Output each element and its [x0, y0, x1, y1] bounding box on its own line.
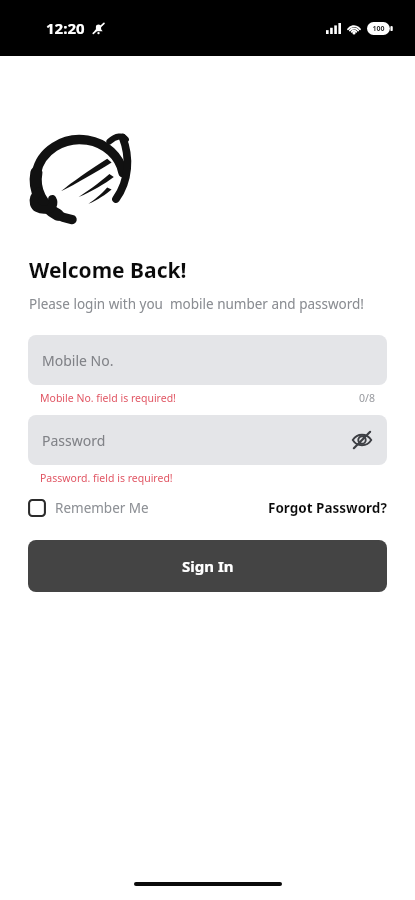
button[interactable]: Remember Me	[28, 499, 149, 517]
button[interactable]: Mobile No.	[28, 335, 387, 385]
staticText: Please login with you mobile number and …	[29, 295, 365, 313]
staticText: Sign In	[182, 556, 234, 576]
button[interactable]: Password	[28, 415, 387, 465]
staticText: 0/8	[359, 391, 375, 405]
staticText: 12:20	[46, 18, 85, 38]
staticText: Mobile No.	[42, 351, 114, 370]
staticText: Password. field is required!	[40, 471, 173, 485]
staticText: 100	[372, 24, 385, 34]
staticText: Password	[42, 431, 349, 450]
button[interactable]: Forgot Password?	[268, 499, 387, 517]
staticText: Forgot Password?	[268, 499, 387, 517]
staticText: Mobile No. field is required!	[40, 391, 176, 405]
staticText: Remember Me	[55, 499, 149, 517]
button[interactable]: Sign In	[28, 540, 387, 592]
button[interactable]: Show password	[349, 427, 375, 453]
staticText: Welcome Back!	[29, 256, 187, 285]
